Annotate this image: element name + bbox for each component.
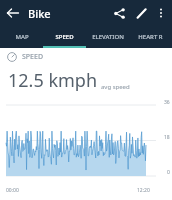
button[interactable]: ELEVATION xyxy=(86,26,129,48)
staticText: SPEED xyxy=(22,52,44,62)
staticText: Bike xyxy=(28,6,51,21)
staticText: SPEED xyxy=(55,33,74,41)
staticText: HEART R xyxy=(138,33,163,41)
button[interactable]: MAP xyxy=(0,26,43,48)
staticText: 36 xyxy=(164,99,170,106)
button[interactable]: Share xyxy=(108,2,130,24)
staticText: ELEVATION xyxy=(92,33,124,41)
button[interactable]: More options xyxy=(152,4,170,22)
staticText: MAP xyxy=(15,33,29,41)
staticText: avg speed xyxy=(101,83,130,91)
button[interactable]: Edit xyxy=(130,2,152,24)
staticText: 0 xyxy=(167,169,170,176)
button[interactable]: Back xyxy=(3,3,23,23)
staticText: 12:20 xyxy=(137,187,150,194)
button[interactable]: HEART R xyxy=(129,26,172,48)
staticText: 18 xyxy=(164,134,170,141)
button[interactable]: SPEED xyxy=(43,26,86,48)
staticText: 00:00 xyxy=(6,187,19,194)
staticText: 12.5 kmph xyxy=(8,68,98,93)
